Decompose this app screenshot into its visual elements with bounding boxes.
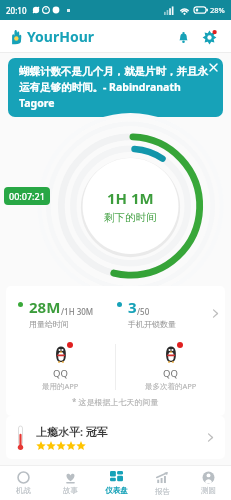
staticText: /1H 30M: [61, 306, 94, 317]
staticText: 上瘾水平: 冠军: [36, 424, 108, 439]
button[interactable]: QQ: [116, 338, 225, 396]
staticText: 20:10: [6, 5, 27, 16]
button[interactable]: 测圆: [185, 466, 231, 500]
staticText: 3: [128, 297, 137, 317]
staticText: 机战: [16, 486, 31, 495]
staticText: 手机开锁数量: [128, 319, 176, 329]
button[interactable]: 报告: [139, 466, 185, 500]
staticText: /50: [137, 306, 150, 317]
staticText: 00:07:21: [9, 190, 45, 202]
staticText: * 这是根据上七天的间量: [72, 396, 159, 407]
staticText: 28%: [210, 5, 225, 15]
staticText: 仪表盘: [105, 486, 128, 495]
button[interactable]: Settings: [196, 24, 222, 50]
staticText: QQ: [163, 367, 178, 380]
staticText: 蝴蝶计数不是几个月，就是片时，并且永运有足够的时间。- Rabindranath…: [19, 65, 212, 110]
staticText: 用量给时间: [29, 319, 69, 329]
button[interactable]: 蝴蝶计数不是几个月，就是片时，并且永运有足够的时间。- Rabindranath…: [8, 58, 223, 117]
button[interactable]: 仪表盘: [93, 466, 139, 500]
button[interactable]: 上瘾水平: 冠军: [6, 416, 225, 459]
staticText: YourHour: [27, 27, 94, 46]
staticText: 28M: [29, 297, 61, 317]
button[interactable]: 机战: [0, 466, 47, 500]
staticText: 故事: [63, 486, 78, 495]
button[interactable]: 00:07:21: [4, 187, 50, 205]
staticText: QQ: [53, 367, 68, 380]
button[interactable]: 28M: [6, 286, 225, 338]
button[interactable]: Close: [205, 59, 221, 75]
button[interactable]: 故事: [47, 466, 93, 500]
button[interactable]: Notifications: [170, 24, 196, 50]
staticText: 最多次着的APP: [145, 381, 197, 391]
staticText: 测圆: [201, 486, 216, 495]
staticText: 报告: [155, 487, 170, 496]
staticText: 最用的APP: [42, 381, 79, 391]
staticText: 剩下的时间: [104, 211, 157, 224]
button[interactable]: QQ: [6, 338, 115, 396]
staticText: 1H 1M: [107, 188, 154, 208]
